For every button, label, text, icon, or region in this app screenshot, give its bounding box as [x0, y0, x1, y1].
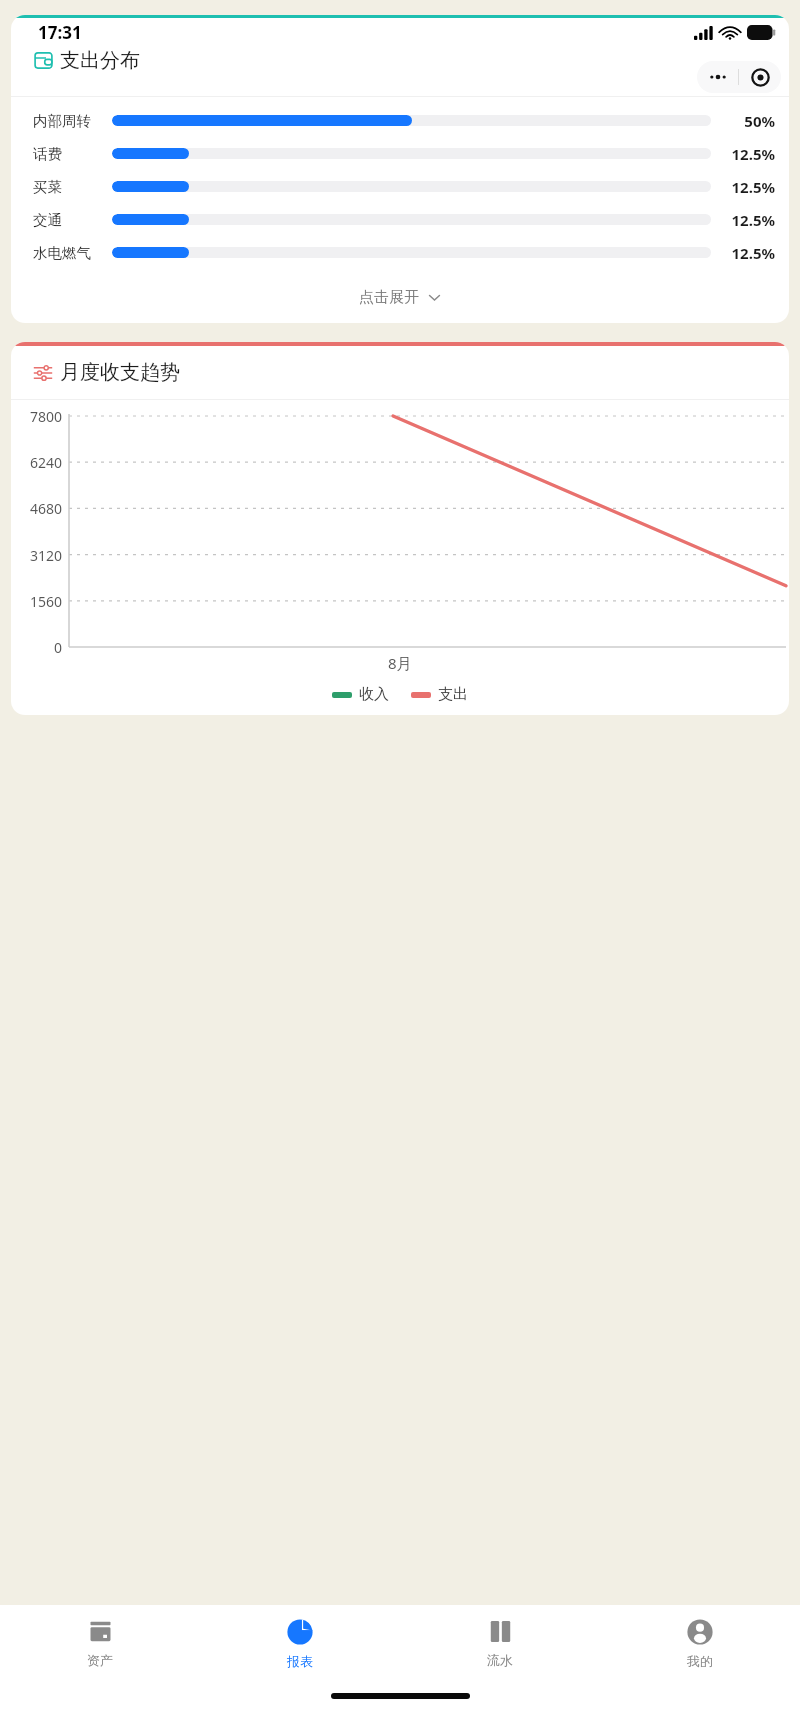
button[interactable]: 内部周转: [11, 104, 789, 137]
staticText: 6240: [30, 453, 63, 471]
staticText: 3120: [30, 546, 63, 564]
staticText: 话费: [33, 145, 62, 163]
staticText: 12.5%: [717, 210, 775, 230]
button[interactable]: 支出: [409, 683, 470, 706]
button[interactable]: 点击展开: [11, 276, 789, 318]
staticText: 17:31: [38, 21, 82, 44]
staticText: 支出分布: [60, 48, 140, 73]
staticText: 50%: [717, 111, 775, 131]
button[interactable]: 话费: [11, 137, 789, 170]
staticText: 收入: [359, 685, 389, 704]
staticText: 报表: [287, 1653, 313, 1669]
staticText: 买菜: [33, 178, 62, 196]
button[interactable]: 流水: [400, 1605, 600, 1681]
staticText: 7800: [30, 407, 63, 425]
staticText: 8月: [388, 653, 412, 673]
button[interactable]: 水电燃气: [11, 236, 789, 269]
staticText: 水电燃气: [33, 244, 91, 262]
button[interactable]: More options: [697, 61, 738, 93]
staticText: 流水: [487, 1652, 513, 1668]
staticText: 12.5%: [717, 243, 775, 263]
staticText: 0: [54, 638, 63, 656]
button[interactable]: 我的: [600, 1605, 800, 1681]
staticText: 支出: [438, 685, 468, 704]
staticText: 12.5%: [717, 144, 775, 164]
staticText: 点击展开: [359, 288, 419, 307]
staticText: 资产: [87, 1652, 113, 1668]
button[interactable]: 报表: [200, 1605, 400, 1681]
staticText: 我的: [687, 1653, 713, 1669]
staticText: 1560: [30, 592, 63, 610]
staticText: 月度收支趋势: [60, 360, 180, 385]
button[interactable]: 交通: [11, 203, 789, 236]
button[interactable]: 收入: [330, 683, 391, 706]
staticText: 交通: [33, 211, 62, 229]
button[interactable]: Close mini program: [739, 61, 781, 93]
staticText: 4680: [30, 499, 63, 517]
staticText: 内部周转: [33, 112, 91, 130]
staticText: 12.5%: [717, 177, 775, 197]
button[interactable]: 买菜: [11, 170, 789, 203]
button[interactable]: 资产: [0, 1605, 200, 1681]
